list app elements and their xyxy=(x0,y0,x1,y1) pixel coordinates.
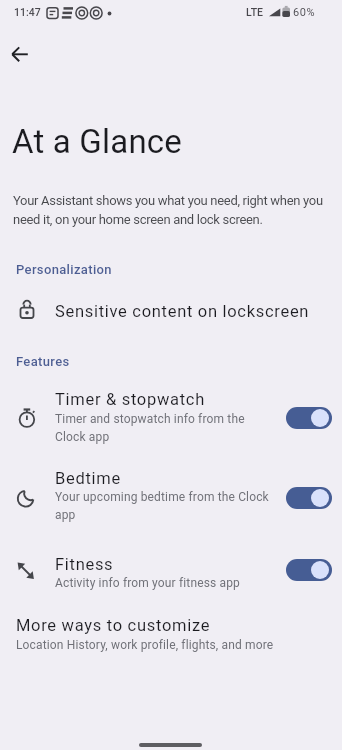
staticText: Fitness xyxy=(55,555,114,574)
button[interactable] xyxy=(286,559,332,581)
staticText: Sensitive content on lockscreen xyxy=(55,302,310,321)
staticText: Timer & stopwatch xyxy=(55,390,205,409)
staticText: Your Assistant shows you what you need, … xyxy=(13,193,330,227)
button[interactable] xyxy=(286,487,332,509)
staticText: Your upcoming bedtime from the Clock app xyxy=(55,490,275,522)
button[interactable]: Timer & stopwatch xyxy=(0,380,342,456)
staticText: Timer and stopwatch info from the Clock … xyxy=(55,412,265,444)
button[interactable]: Sensitive content on lockscreen xyxy=(0,284,342,336)
button[interactable] xyxy=(6,40,34,68)
staticText: LTE xyxy=(246,6,263,18)
staticText: 11:47 xyxy=(14,6,41,18)
staticText: Bedtime xyxy=(55,469,121,488)
staticText: Personalization xyxy=(16,262,112,277)
button[interactable] xyxy=(286,407,332,429)
button[interactable]: More ways to customize xyxy=(0,608,342,660)
button[interactable]: Bedtime xyxy=(0,458,342,538)
staticText: Location History, work profile, flights,… xyxy=(16,638,274,652)
staticText: Features xyxy=(16,354,70,369)
button[interactable]: Fitness xyxy=(0,544,342,604)
staticText: At a Glance xyxy=(12,122,183,161)
staticText: More ways to customize xyxy=(16,616,211,635)
staticText: 60% xyxy=(293,6,316,19)
staticText: Activity info from your fitness app xyxy=(55,576,295,590)
